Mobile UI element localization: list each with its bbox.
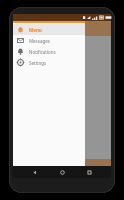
- button[interactable]: Recent apps: [84, 167, 95, 178]
- staticText: Settings: [29, 60, 47, 66]
- button[interactable]: Settings: [13, 57, 85, 68]
- button[interactable]: Menu: [13, 24, 85, 35]
- button[interactable]: Back: [29, 167, 40, 178]
- staticText: Messages: [29, 38, 50, 44]
- staticText: Notifications: [29, 49, 56, 55]
- staticText: Menu: [29, 27, 42, 33]
- button[interactable]: Messages: [13, 35, 85, 46]
- button[interactable]: Notifications: [13, 46, 85, 57]
- button[interactable]: by Developer #1: [13, 159, 111, 166]
- button[interactable]: Home: [57, 167, 68, 178]
